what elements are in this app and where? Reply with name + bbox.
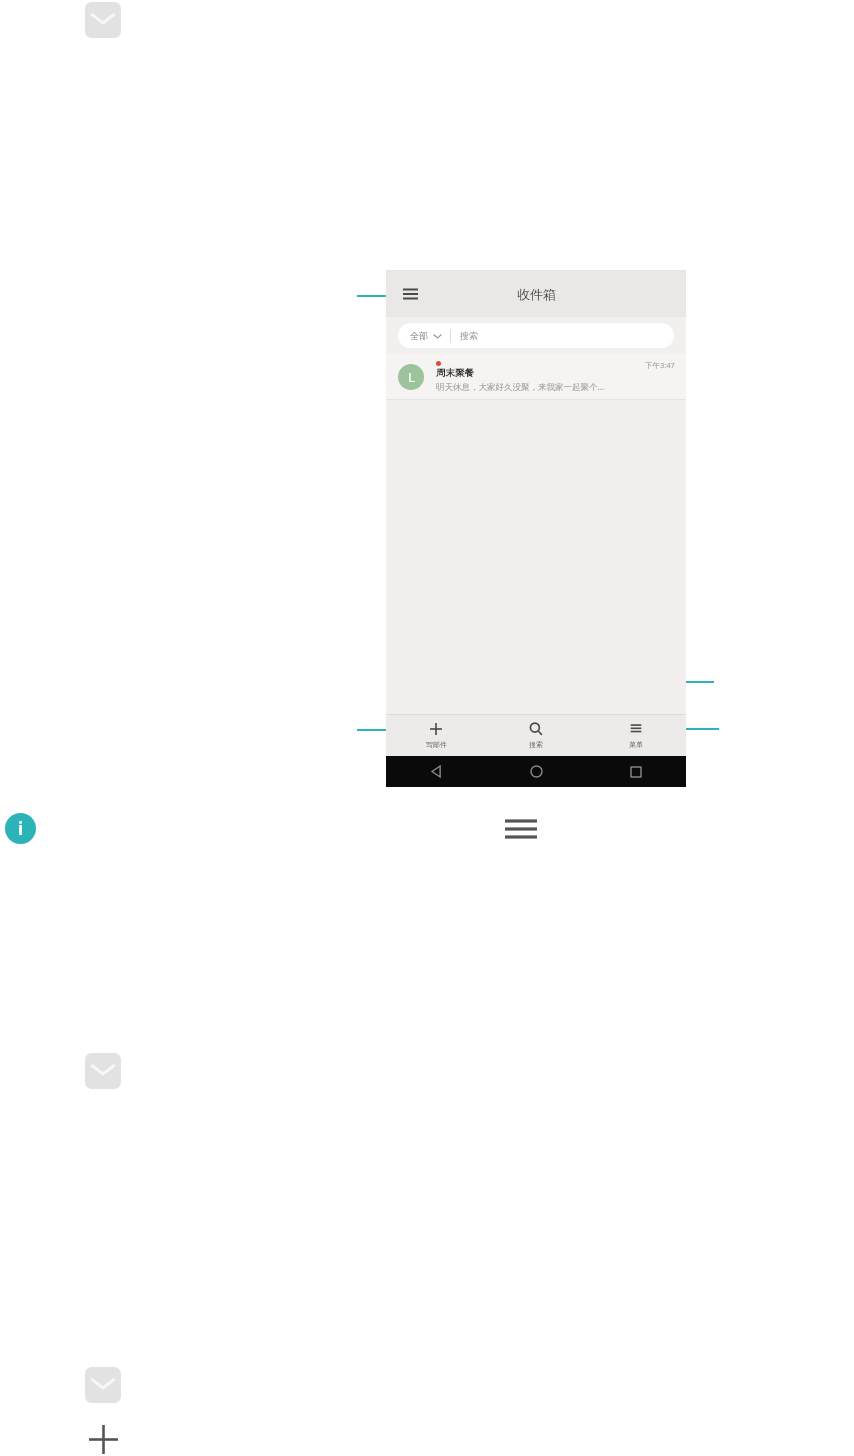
staticText: 菜单 <box>629 740 643 749</box>
staticText: i <box>18 817 24 840</box>
button[interactable]: Back <box>386 756 486 787</box>
staticText: 写邮件 <box>426 740 447 749</box>
staticText: L <box>408 368 415 386</box>
staticText: 明天休息，大家好久没聚，来我家一起聚个... <box>436 381 605 393</box>
staticText: 全部 <box>410 330 428 341</box>
button[interactable]: Recents <box>586 756 686 787</box>
button[interactable]: 全部 <box>398 323 674 348</box>
button[interactable]: L <box>386 354 686 399</box>
button[interactable]: 写邮件 <box>386 715 486 756</box>
button[interactable]: Home <box>486 756 586 787</box>
staticText: 搜索 <box>529 740 543 749</box>
staticText: 下午3:47 <box>645 360 675 370</box>
button[interactable]: 菜单 <box>586 715 686 756</box>
staticText: 周末聚餐 <box>436 367 474 379</box>
button[interactable]: Navigation drawer <box>396 280 424 308</box>
staticText: 搜索 <box>460 330 478 341</box>
button[interactable]: 搜索 <box>486 715 586 756</box>
staticText: 收件箱 <box>517 286 556 302</box>
